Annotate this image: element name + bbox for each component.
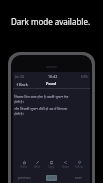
staticText: Write	[34, 165, 41, 169]
staticText: previous	[18, 176, 31, 180]
staticText: Dark mode available.	[0, 16, 102, 27]
staticText: 10:42	[48, 74, 58, 79]
staticText: Home	[20, 165, 28, 169]
staticText: next	[75, 176, 82, 180]
button[interactable]: Home	[20, 161, 28, 169]
staticText: Jio 4G	[15, 74, 25, 79]
button[interactable]: Write	[34, 161, 41, 169]
button[interactable]: Back	[16, 82, 28, 87]
staticText: Copy	[48, 165, 55, 169]
staticText: और जिसकी ज़ुबान मीठी हो उस में मिलावट हो…	[14, 106, 68, 116]
staticText: 63%	[81, 74, 88, 79]
staticText: Back	[19, 82, 28, 87]
button[interactable]: Share	[62, 161, 69, 169]
button[interactable]: 2 of 5	[46, 175, 57, 181]
button[interactable]: Copy	[48, 161, 55, 169]
button[interactable]: previous	[18, 176, 31, 180]
staticText: जिसका दिल साफ़ होता है उसकी ज़ुबान तेज़ …	[14, 94, 69, 104]
staticText: Share	[62, 165, 69, 169]
staticText: Food	[46, 81, 57, 87]
button[interactable]: Follow	[75, 161, 83, 169]
button[interactable]: next	[75, 176, 82, 180]
staticText: Follow	[75, 165, 83, 169]
staticText: 2 of 5	[48, 176, 56, 180]
